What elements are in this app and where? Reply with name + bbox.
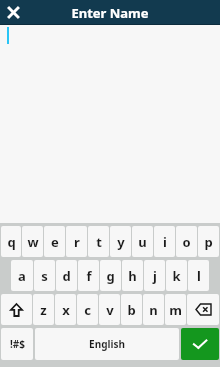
staticText: s xyxy=(41,267,48,285)
staticText: x xyxy=(62,301,70,319)
staticText: q xyxy=(7,233,16,251)
staticText: d xyxy=(62,267,71,285)
button[interactable]: Done xyxy=(181,328,219,360)
button[interactable]: z xyxy=(33,294,54,325)
staticText: w xyxy=(27,233,39,251)
button[interactable]: m xyxy=(165,294,186,325)
button[interactable]: Backspace xyxy=(187,294,219,325)
button[interactable]: c xyxy=(77,294,98,325)
staticText: f xyxy=(86,267,92,285)
button[interactable]: h xyxy=(122,260,143,291)
staticText: o xyxy=(182,233,191,251)
button[interactable]: p xyxy=(198,226,219,257)
button[interactable]: r xyxy=(66,226,87,257)
button[interactable]: o xyxy=(176,226,197,257)
staticText: m xyxy=(169,301,182,319)
staticText: i xyxy=(163,233,167,251)
staticText: t xyxy=(96,233,102,251)
staticText: Enter Name xyxy=(71,4,149,22)
button[interactable]: s xyxy=(34,260,55,291)
button[interactable]: k xyxy=(166,260,187,291)
button[interactable]: English xyxy=(35,328,179,360)
button[interactable] xyxy=(0,25,220,223)
button[interactable]: n xyxy=(143,294,164,325)
button[interactable]: u xyxy=(132,226,153,257)
staticText: y xyxy=(117,233,125,251)
button[interactable]: i xyxy=(154,226,175,257)
staticText: r xyxy=(74,233,80,251)
staticText: c xyxy=(84,301,91,319)
button[interactable]: d xyxy=(56,260,77,291)
button[interactable]: t xyxy=(88,226,109,257)
staticText: n xyxy=(149,301,158,319)
button[interactable]: a xyxy=(11,260,33,291)
button[interactable]: x xyxy=(55,294,76,325)
button[interactable]: q xyxy=(1,226,21,257)
button[interactable]: b xyxy=(121,294,142,325)
staticText: p xyxy=(204,233,213,251)
button[interactable]: j xyxy=(144,260,165,291)
staticText: v xyxy=(106,301,114,319)
button[interactable]: g xyxy=(100,260,121,291)
button[interactable]: e xyxy=(44,226,65,257)
button[interactable]: f xyxy=(78,260,99,291)
button[interactable]: w xyxy=(22,226,43,257)
staticText: z xyxy=(40,301,47,319)
button[interactable]: l xyxy=(188,260,209,291)
staticText: English xyxy=(89,337,125,351)
staticText: h xyxy=(128,267,137,285)
staticText: g xyxy=(106,267,115,285)
staticText: k xyxy=(172,267,181,285)
staticText: l xyxy=(197,267,201,285)
staticText: !#$ xyxy=(10,337,25,351)
button[interactable]: !#$ xyxy=(1,328,33,360)
button[interactable]: y xyxy=(110,226,131,257)
button[interactable]: Close xyxy=(0,0,26,25)
button[interactable]: Shift xyxy=(1,294,32,325)
staticText: u xyxy=(138,233,147,251)
staticText: a xyxy=(18,267,26,285)
button[interactable]: v xyxy=(99,294,120,325)
staticText: j xyxy=(153,267,157,285)
staticText: b xyxy=(127,301,136,319)
staticText: e xyxy=(51,233,59,251)
